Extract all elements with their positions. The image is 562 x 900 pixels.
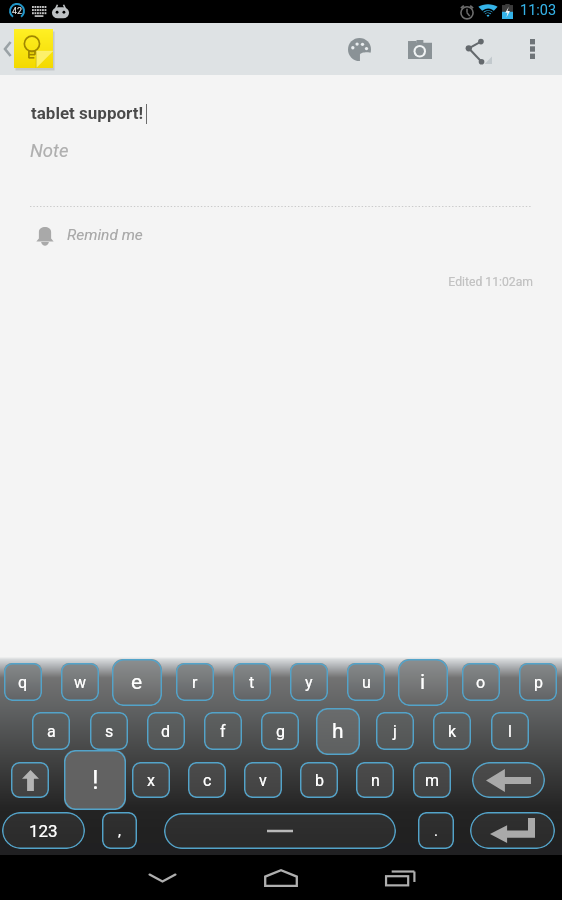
staticText: 11:03 [520, 2, 557, 19]
button[interactable]: Home [241, 855, 321, 900]
staticText: ! [92, 765, 99, 795]
staticText: 123 [29, 821, 58, 841]
staticText: s [105, 722, 114, 741]
button[interactable]: n [356, 762, 394, 798]
staticText: , [118, 822, 121, 840]
staticText: e [131, 670, 143, 695]
button[interactable]: j [376, 712, 414, 750]
button[interactable]: Camera [394, 23, 446, 75]
button[interactable]: tablet support! [31, 103, 144, 123]
staticText: q [18, 673, 28, 692]
staticText: x [147, 771, 155, 790]
staticText: r [192, 673, 198, 692]
button[interactable]: c [188, 762, 226, 798]
staticText: f [220, 722, 226, 741]
staticText: j [393, 722, 397, 741]
button[interactable]: e [112, 659, 162, 706]
button[interactable]: b [300, 762, 338, 798]
button[interactable]: ! [64, 750, 126, 810]
staticText: b [315, 771, 324, 790]
staticText: h [332, 719, 344, 744]
button[interactable]: d [147, 712, 185, 750]
staticText: Edited 11:02am [0, 275, 533, 289]
button[interactable]: q [4, 663, 42, 701]
button[interactable]: g [261, 712, 299, 750]
staticText: p [534, 673, 543, 692]
button[interactable]: Note [30, 140, 69, 162]
button[interactable]: t [233, 663, 271, 701]
staticText: o [476, 673, 486, 692]
staticText: i [420, 670, 426, 695]
button[interactable]: Color [333, 23, 385, 75]
button[interactable]: a [32, 712, 70, 750]
button[interactable]: Hide keyboard [122, 855, 202, 900]
button[interactable]: k [433, 712, 471, 750]
staticText: k [448, 722, 457, 741]
button[interactable]: m [413, 762, 451, 798]
button[interactable]: s [90, 712, 128, 750]
button[interactable]: Enter [470, 812, 555, 849]
button[interactable]: Space [164, 813, 396, 849]
staticText: d [161, 722, 171, 741]
staticText: . [434, 822, 438, 840]
staticText: tablet support! [31, 103, 144, 123]
staticText: u [362, 673, 371, 692]
button[interactable]: More options [506, 23, 558, 75]
button[interactable]: o [462, 663, 500, 701]
staticText: l [508, 722, 512, 741]
button[interactable]: Navigate up [0, 23, 56, 75]
button[interactable]: l [491, 712, 529, 750]
staticText: c [203, 771, 212, 790]
staticText: w [74, 673, 87, 692]
button[interactable]: x [132, 762, 170, 798]
staticText: n [371, 771, 380, 790]
button[interactable]: . [418, 812, 454, 849]
button[interactable]: f [204, 712, 242, 750]
button[interactable]: w [61, 663, 99, 701]
staticText: g [276, 722, 285, 741]
button[interactable]: v [244, 762, 282, 798]
button[interactable]: Delete [472, 762, 545, 798]
staticText: y [305, 673, 313, 692]
staticText: t [249, 673, 255, 692]
button[interactable]: u [347, 663, 385, 701]
button[interactable]: , [102, 812, 137, 849]
staticText: v [259, 771, 267, 790]
button[interactable]: h [316, 708, 360, 755]
staticText: a [47, 722, 56, 741]
button[interactable]: Shift [11, 762, 49, 798]
staticText: Remind me [67, 226, 143, 244]
staticText: m [425, 771, 440, 790]
staticText: 42 [9, 6, 25, 19]
button[interactable]: Share [449, 23, 501, 75]
button[interactable]: p [519, 663, 557, 701]
button[interactable]: r [176, 663, 214, 701]
button[interactable]: Remind me [30, 221, 162, 253]
button[interactable]: i [398, 659, 448, 706]
button[interactable]: 123 [2, 812, 85, 849]
button[interactable]: Recent apps [360, 855, 440, 900]
button[interactable]: y [290, 663, 328, 701]
